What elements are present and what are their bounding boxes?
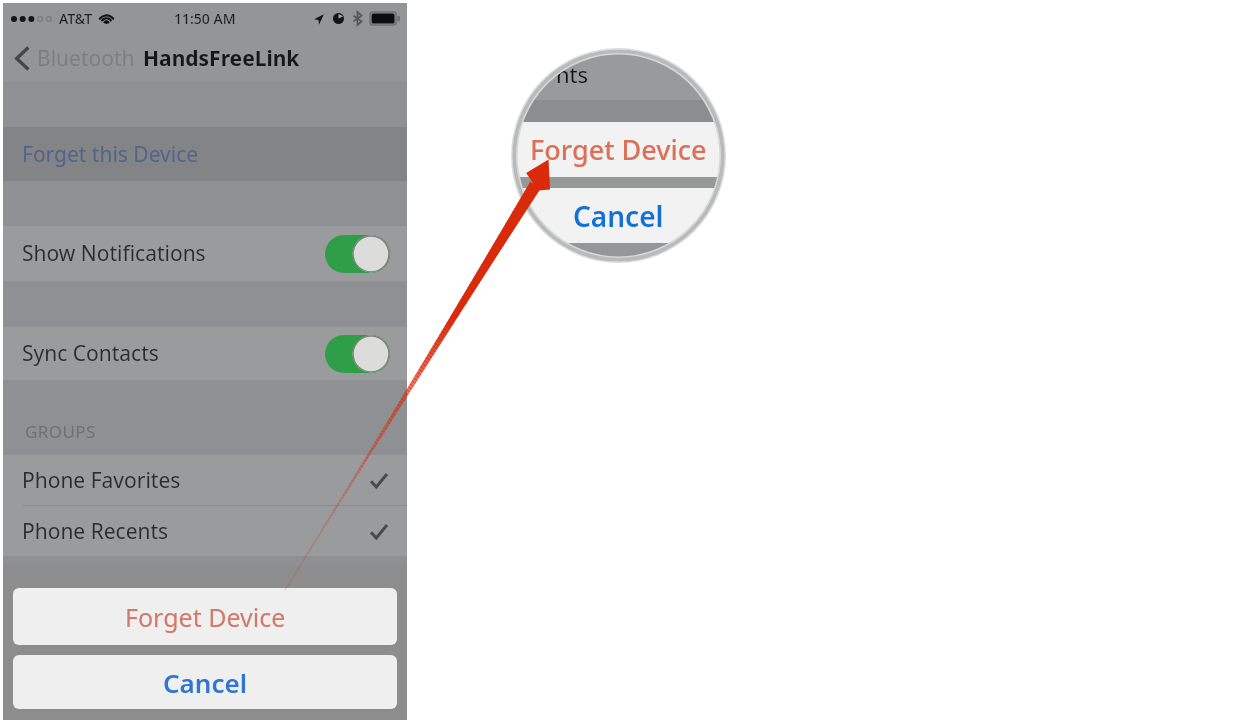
button[interactable]: Phone Favorites: [3, 455, 407, 505]
button[interactable]: Back to Bluetooth: [16, 44, 135, 73]
button[interactable]: Forget this Device: [3, 127, 407, 181]
staticText: Bluetooth: [37, 44, 135, 73]
staticText: Phone Favorites: [22, 466, 181, 495]
staticText: HandsFreeLink: [143, 44, 300, 73]
staticText: GROUPS: [25, 420, 96, 443]
staticText: Cancel: [163, 665, 248, 700]
button[interactable]: Cancel: [13, 655, 397, 709]
button[interactable]: Forget Device: [515, 122, 722, 177]
staticText: Cancel: [573, 197, 664, 235]
staticText: Forget Device: [125, 600, 286, 634]
staticText: Show Notifications: [22, 239, 206, 268]
button[interactable]: On: [325, 235, 390, 273]
staticText: AT&T: [59, 9, 93, 28]
staticText: Phone Recents: [22, 517, 169, 546]
button[interactable]: Phone Recents: [3, 506, 407, 556]
button[interactable]: Forget Device: [13, 588, 397, 645]
button[interactable]: On: [325, 335, 390, 373]
button[interactable]: Show Notifications: [3, 226, 407, 281]
staticText: Forget Device: [530, 131, 707, 168]
staticText: 11:50 AM: [174, 9, 236, 28]
staticText: Forget this Device: [22, 140, 199, 169]
button[interactable]: Cancel: [515, 188, 722, 243]
staticText: nts: [556, 59, 589, 89]
button[interactable]: Sync Contacts: [3, 327, 407, 380]
staticText: Sync Contacts: [22, 339, 159, 368]
